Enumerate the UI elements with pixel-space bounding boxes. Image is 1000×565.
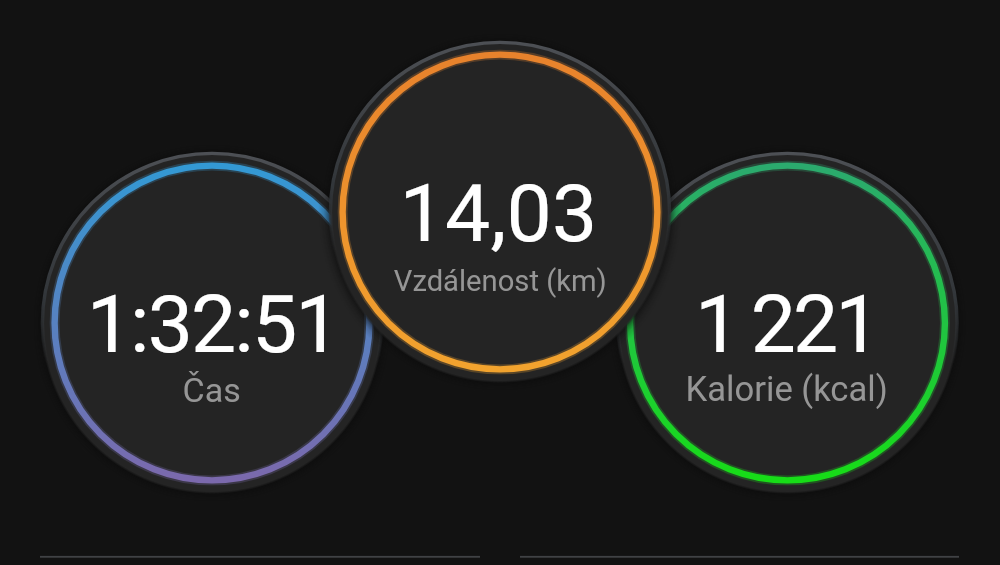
button[interactable]: Kalorie 1 221 kcal (617, 152, 959, 494)
button[interactable]: Čas 1:32:51 (41, 152, 383, 494)
button[interactable]: Vzdálenost 14,03 km (329, 41, 671, 383)
